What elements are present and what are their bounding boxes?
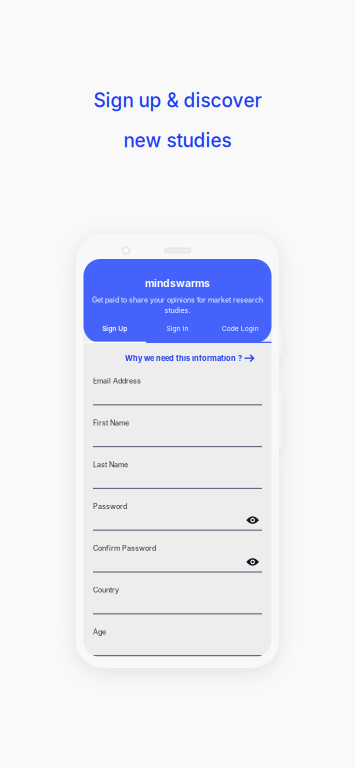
staticText: new studies: [123, 129, 231, 152]
staticText: Sign up & discover: [93, 89, 261, 112]
staticText: mindswarms: [145, 277, 210, 290]
button[interactable]: Why we need this information ?: [83, 343, 271, 363]
staticText: Sign In: [166, 325, 188, 333]
staticText: Get paid to share your opinions for mark…: [92, 296, 263, 304]
staticText: Age: [93, 627, 106, 636]
staticText: Country: [93, 586, 119, 594]
button[interactable]: Email Address: [93, 363, 262, 405]
staticText: Why we need this information ?: [125, 354, 242, 363]
button[interactable]: Last Name: [93, 447, 262, 489]
staticText: Confirm Password: [93, 544, 156, 552]
staticText: First Name: [93, 418, 129, 427]
staticText: Email Address: [93, 377, 141, 385]
staticText: Last Name: [93, 460, 128, 469]
button[interactable]: Code Login: [209, 321, 271, 343]
staticText: Code Login: [222, 325, 259, 333]
staticText: Password: [93, 502, 127, 511]
button[interactable]: First Name: [93, 405, 262, 447]
button[interactable]: Country: [93, 572, 262, 614]
button[interactable]: Sign In: [146, 321, 209, 343]
staticText: studies.: [164, 306, 190, 315]
button[interactable]: Confirm Password: [93, 531, 262, 572]
button[interactable]: Sign Up: [83, 321, 146, 343]
button[interactable]: Age: [93, 614, 262, 656]
button[interactable]: Password: [93, 489, 262, 531]
staticText: Sign Up: [102, 325, 127, 333]
